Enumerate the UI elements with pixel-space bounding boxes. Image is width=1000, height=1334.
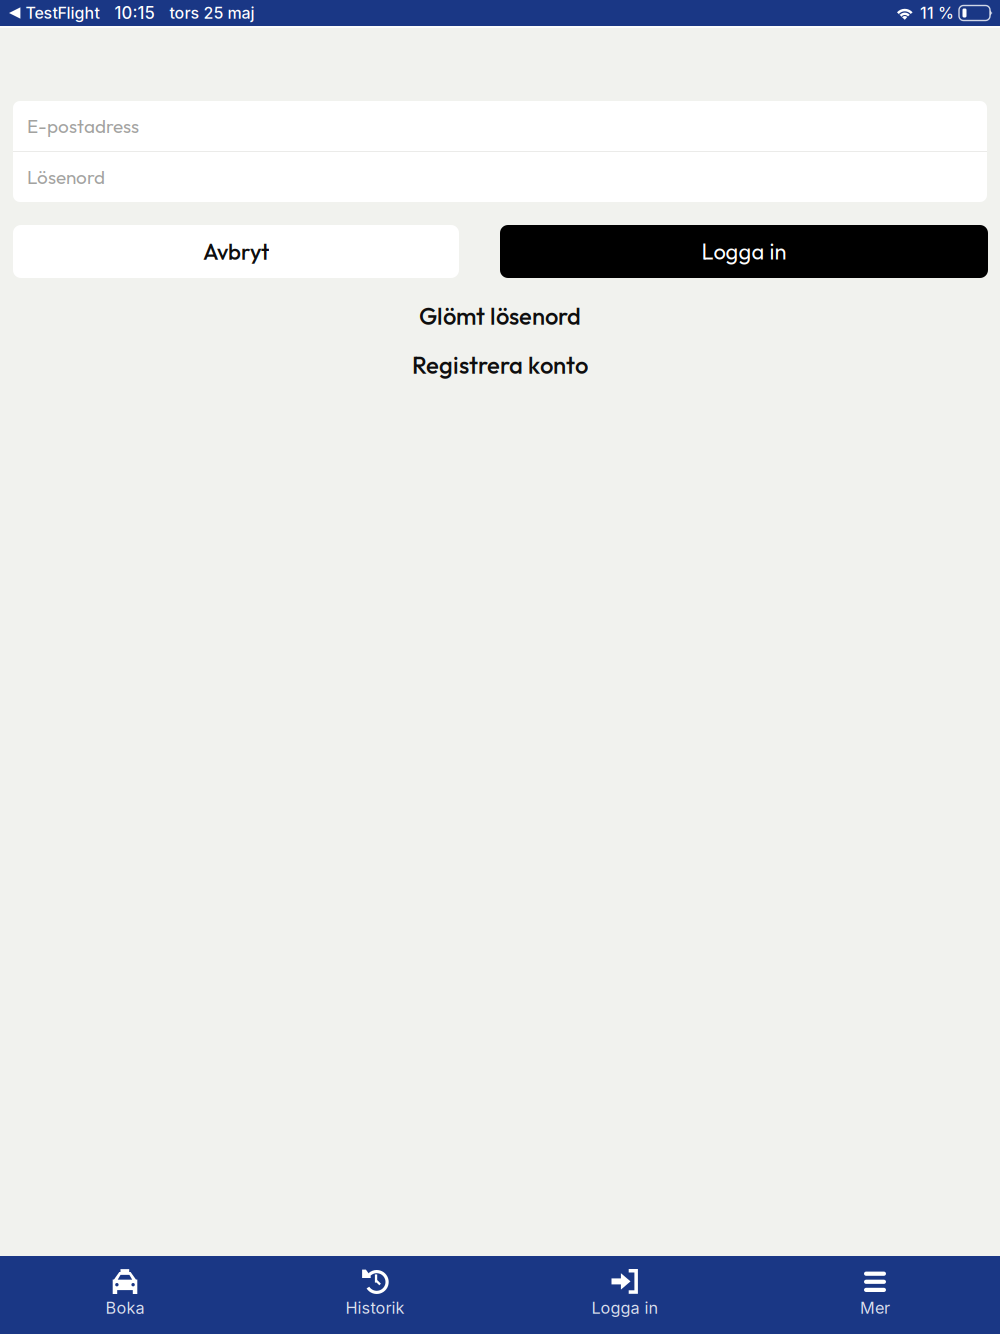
button[interactable]: Mer [750,1256,1000,1334]
button[interactable]: Boka [0,1256,250,1334]
button[interactable]: Logga in [500,225,988,278]
staticText: Lösenord [27,165,105,189]
staticText: Registrera konto [412,350,588,380]
staticText: 11 % [920,3,954,23]
staticText: Mer [860,1298,890,1318]
button[interactable]: Glömt lösenord [0,303,1000,329]
button[interactable]: Historik [250,1256,500,1334]
staticText: TestFlight [25,3,99,23]
button[interactable]: Logga in [500,1256,750,1334]
staticText: Logga in [591,1298,658,1318]
staticText: Logga in [701,238,786,265]
button[interactable]: Lösenord [13,152,987,202]
staticText: 10:15 [114,3,154,23]
button[interactable]: E-postadress [13,101,987,151]
button[interactable]: Avbryt [13,225,459,278]
staticText: Boka [105,1298,144,1318]
staticText: E-postadress [27,114,139,138]
staticText: Historik [345,1298,404,1318]
staticText: tors 25 maj [169,3,254,23]
button[interactable]: Registrera konto [0,352,1000,378]
staticText: Avbryt [203,237,269,266]
staticText: Glömt lösenord [419,301,581,331]
